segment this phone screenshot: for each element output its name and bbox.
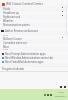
button[interactable]: Grid view xyxy=(60,86,62,88)
staticText: Sightscan unit xyxy=(3,15,21,19)
staticText: 28/09/2021 xyxy=(55,95,66,98)
staticText: Progress Indicator xyxy=(2,67,25,71)
button[interactable]: Add or Remove an Account xyxy=(0,28,68,33)
button[interactable]: Rollover Cursor xyxy=(3,37,22,41)
button[interactable]: Nest Prompt Administration apps xyxy=(0,52,68,56)
staticText: Style xyxy=(3,34,9,37)
button[interactable]: Wifi Cactus Control Center xyxy=(0,0,68,7)
button[interactable]: Nest Window Administration service asi xyxy=(0,56,68,60)
staticText: Comedies some sec xyxy=(3,41,28,45)
button[interactable]: Public xyxy=(3,7,11,11)
staticText: Headlines up xyxy=(3,11,19,15)
staticText: Weather xyxy=(3,19,14,23)
button[interactable]: Weather xyxy=(3,19,14,23)
button[interactable]: Sightscan unit xyxy=(3,15,21,19)
staticText: Nest Prompt Administration apps xyxy=(5,52,46,56)
staticText: Reconstruction points xyxy=(3,23,30,27)
staticText: 14:58 xyxy=(58,91,64,94)
button[interactable]: Headlines up xyxy=(3,11,19,15)
staticText: Apps xyxy=(3,48,9,51)
button[interactable]: List view xyxy=(64,86,66,88)
button[interactable]: Comedies some sec xyxy=(3,41,28,45)
button[interactable]: Nest TweetMail Automatic apps xyxy=(0,60,68,64)
staticText: Wifi Cactus Control Center xyxy=(6,2,43,6)
button[interactable]: Reconstruction points xyxy=(3,23,30,27)
staticText: Nest Window Administration service asi xyxy=(5,56,54,60)
staticText: Add or Remove an Account xyxy=(5,29,38,33)
button[interactable]: Style xyxy=(3,33,9,37)
button[interactable]: Apps xyxy=(3,47,9,51)
staticText: Nest TweetMail Automatic apps xyxy=(5,60,44,64)
button[interactable]: Progress Indicator xyxy=(2,67,25,71)
staticText: Next xyxy=(3,45,9,49)
staticText: Rollover Cursor xyxy=(3,37,22,41)
staticText: Public xyxy=(3,7,11,11)
button[interactable]: Next xyxy=(3,45,9,49)
